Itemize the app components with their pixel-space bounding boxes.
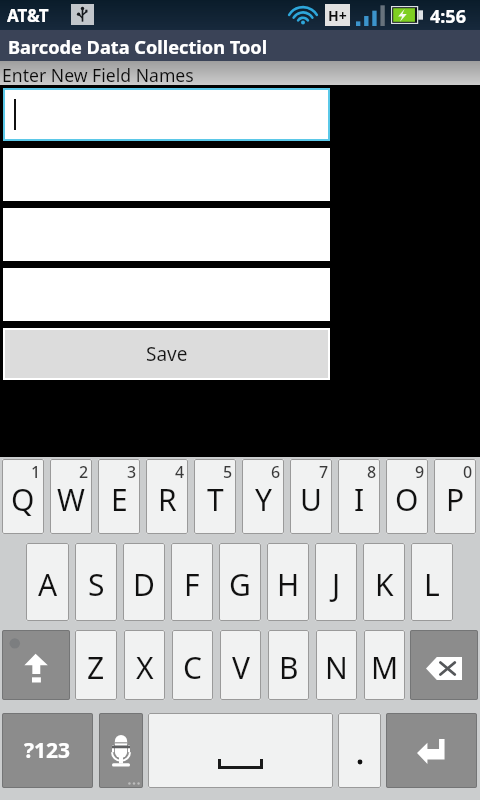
staticText: 1	[31, 461, 41, 483]
staticText: ?123	[24, 736, 71, 765]
staticText: L	[424, 564, 440, 605]
button[interactable]: 8	[338, 459, 380, 534]
staticText: W	[57, 479, 85, 520]
staticText: B	[279, 647, 299, 688]
staticText: AT&T	[7, 4, 49, 27]
staticText: 8	[367, 461, 377, 483]
button[interactable]: ?123	[2, 713, 93, 788]
staticText: S	[88, 564, 105, 605]
button[interactable]: X	[124, 630, 165, 700]
staticText: X	[136, 647, 154, 688]
button[interactable]: 6	[242, 459, 284, 534]
staticText: R	[158, 479, 177, 520]
staticText: V	[232, 647, 250, 688]
button[interactable]: 5	[194, 459, 236, 534]
staticText: P	[446, 479, 465, 520]
staticText: 7	[319, 461, 329, 483]
button[interactable]: A	[26, 543, 69, 621]
staticText: 4	[175, 461, 185, 483]
button[interactable]: D	[123, 543, 165, 621]
staticText: D	[133, 564, 155, 605]
button[interactable]	[338, 713, 381, 788]
button[interactable]: 3	[98, 459, 140, 534]
button[interactable]: Voice input	[99, 713, 143, 788]
button[interactable]: 7	[290, 459, 332, 534]
staticText: Enter New Field Names	[2, 63, 194, 87]
staticText: I	[354, 479, 365, 520]
staticText: N	[325, 647, 348, 688]
button[interactable]: L	[411, 543, 453, 621]
staticText: U	[300, 479, 322, 520]
button[interactable]: N	[316, 630, 357, 700]
staticText: 3	[127, 461, 137, 483]
button[interactable]: 4	[146, 459, 188, 534]
button[interactable]: J	[315, 543, 357, 621]
staticText: H+	[328, 6, 347, 25]
staticText: Save	[146, 341, 188, 367]
button[interactable]: Shift	[2, 630, 70, 700]
staticText: A	[38, 564, 58, 605]
button[interactable]: F	[171, 543, 213, 621]
staticText: 2	[79, 461, 89, 483]
staticText: M	[371, 647, 399, 688]
staticText: Barcode Data Collection Tool	[8, 35, 268, 60]
button[interactable]: 9	[386, 459, 428, 534]
staticText: 9	[415, 461, 425, 483]
button[interactable]: 2	[50, 459, 92, 534]
staticText: 4:56	[430, 4, 466, 29]
staticText: O	[395, 479, 419, 520]
staticText: G	[229, 564, 251, 605]
staticText: E	[111, 479, 128, 520]
button[interactable]: M	[364, 630, 405, 700]
button[interactable]: 0	[434, 459, 476, 534]
button[interactable]: Z	[75, 630, 117, 700]
button[interactable]: 1	[2, 459, 44, 534]
staticText: 5	[223, 461, 233, 483]
staticText: C	[183, 647, 202, 688]
staticText: Q	[11, 479, 35, 520]
button[interactable]	[5, 90, 328, 139]
staticText: Y	[255, 479, 272, 520]
staticText: 0	[463, 461, 473, 483]
staticText: H	[277, 564, 300, 605]
button[interactable]: Space	[148, 713, 333, 788]
button[interactable]: H	[267, 543, 309, 621]
staticText: J	[332, 564, 341, 605]
button[interactable]: V	[220, 630, 261, 700]
button[interactable]: S	[75, 543, 117, 621]
staticText: 6	[271, 461, 281, 483]
button[interactable]: Enter	[386, 713, 477, 788]
button[interactable]: Backspace	[410, 630, 478, 700]
button[interactable]: K	[363, 543, 405, 621]
button[interactable]: Save	[5, 330, 328, 378]
button[interactable]: B	[268, 630, 309, 700]
staticText: K	[375, 564, 394, 605]
staticText: F	[184, 564, 200, 605]
staticText: Z	[87, 647, 105, 688]
button[interactable]: C	[172, 630, 213, 700]
button[interactable]: G	[219, 543, 261, 621]
staticText: T	[207, 479, 224, 520]
